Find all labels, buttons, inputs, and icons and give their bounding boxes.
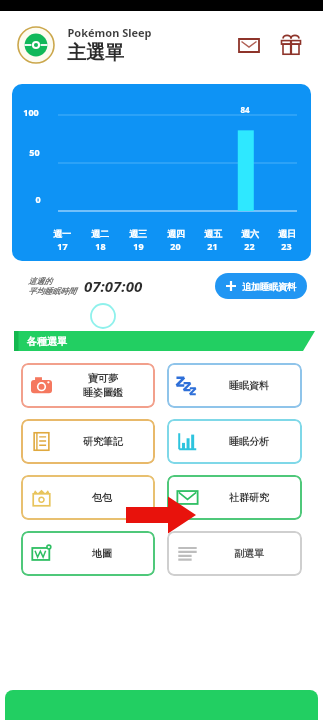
staticText: 週二 (91, 228, 109, 239)
staticText: 週四 (167, 228, 185, 239)
staticText: 84 (240, 104, 250, 115)
staticText: 包包 (92, 491, 112, 504)
staticText: Pokémon Sleep (67, 25, 152, 40)
staticText: 地圖 (92, 547, 112, 560)
button[interactable]: 包包 (21, 475, 155, 520)
button[interactable]: 研究筆記 (21, 419, 155, 464)
staticText: 週三 (129, 228, 147, 239)
staticText: 週日 (278, 228, 296, 239)
staticText: 0 (35, 193, 41, 205)
button[interactable]: 地圖 (21, 531, 155, 576)
staticText: 50 (29, 146, 40, 158)
staticText: 各種選單 (27, 335, 67, 348)
button[interactable]: 100 (12, 84, 311, 261)
staticText: 睡姿圖鑑 (83, 386, 123, 399)
staticText: 社群研究 (229, 491, 269, 504)
button[interactable]: Mail (234, 32, 264, 58)
staticText: 23 (281, 240, 292, 252)
button[interactable]: Profile (17, 26, 55, 64)
button[interactable]: 副選單 (167, 531, 302, 576)
staticText: 週六 (241, 228, 259, 239)
staticText: 睡眠資料 (229, 379, 269, 392)
button[interactable]: Gifts (276, 32, 306, 58)
staticText: 週一 (53, 228, 71, 239)
staticText: 這週的 (28, 276, 52, 286)
staticText: 22 (244, 240, 255, 252)
button[interactable]: 睡眠資料 (167, 363, 302, 408)
button[interactable]: 追加睡眠資料 (226, 273, 296, 299)
staticText: 週五 (204, 228, 222, 239)
staticText: 19 (133, 240, 144, 252)
staticText: 追加睡眠資料 (242, 281, 296, 292)
button[interactable] (5, 690, 318, 720)
button[interactable]: 睡眠分析 (167, 419, 302, 464)
button[interactable]: 寶可夢 (21, 363, 155, 408)
staticText: 07:07:00 (84, 276, 143, 296)
staticText: 18 (95, 240, 106, 252)
staticText: 平均睡眠時間 (28, 286, 76, 296)
staticText: 21 (207, 240, 218, 252)
staticText: 副選單 (234, 547, 264, 560)
staticText: 20 (170, 240, 181, 252)
staticText: 100 (23, 106, 39, 118)
staticText: 睡眠分析 (229, 435, 269, 448)
button[interactable]: 社群研究 (167, 475, 302, 520)
staticText: 寶可夢 (88, 372, 118, 385)
staticText: 研究筆記 (83, 435, 123, 448)
staticText: 17 (57, 240, 68, 252)
staticText: 主選單 (67, 41, 124, 65)
